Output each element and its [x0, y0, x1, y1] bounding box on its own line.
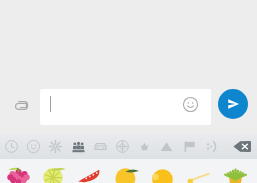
- button[interactable]: Flags: [178, 134, 200, 159]
- button[interactable]: Activity: [111, 134, 133, 159]
- button[interactable]: Nature: [44, 134, 66, 159]
- button[interactable]: [181, 159, 217, 183]
- button[interactable]: [217, 159, 253, 183]
- button[interactable]: Emoticons: [200, 134, 222, 159]
- button[interactable]: [108, 159, 144, 183]
- button[interactable]: Emoji: [182, 96, 198, 112]
- button[interactable]: Backspace: [230, 134, 254, 159]
- button[interactable]: Attach: [9, 93, 34, 117]
- button[interactable]: Recent: [0, 134, 22, 159]
- button[interactable]: Objects: [133, 134, 155, 159]
- button[interactable]: Emoji: [40, 89, 211, 125]
- button[interactable]: [144, 159, 180, 183]
- button[interactable]: [71, 159, 107, 183]
- button[interactable]: Travel: [89, 134, 111, 159]
- button[interactable]: [35, 159, 71, 183]
- button[interactable]: [0, 159, 36, 183]
- button[interactable]: Smileys: [22, 134, 44, 159]
- button[interactable]: Symbols: [155, 134, 177, 159]
- button[interactable]: Send: [218, 89, 248, 119]
- button[interactable]: People: [67, 134, 89, 159]
